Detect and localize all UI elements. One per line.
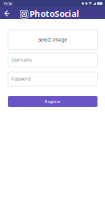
staticText: Username — [11, 57, 31, 63]
staticText: 19:36 — [3, 1, 12, 6]
staticText: Register — [45, 99, 61, 104]
staticText: PhotoSocial — [30, 8, 80, 19]
button[interactable]: Select Image — [8, 30, 97, 49]
button[interactable]: Register — [8, 96, 97, 107]
staticText: Select Image — [38, 37, 67, 43]
staticText: Password — [11, 76, 31, 82]
button[interactable]: Back — [0, 7, 13, 19]
